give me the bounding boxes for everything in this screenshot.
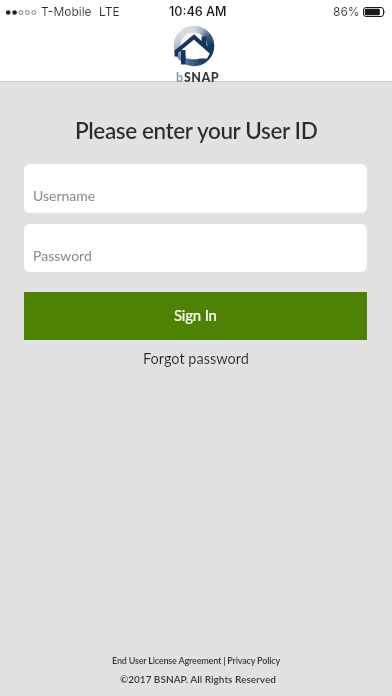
staticText: SNAP xyxy=(184,70,220,85)
button[interactable]: Sign In xyxy=(24,292,367,340)
staticText: ©2017 BSNAP. All Rights Reserved xyxy=(120,673,276,685)
staticText: LTE xyxy=(99,4,120,19)
staticText: Password xyxy=(33,247,92,264)
button[interactable]: Forgot password xyxy=(143,350,249,367)
button[interactable]: End User License Agreement | Privacy Pol… xyxy=(112,655,280,666)
button[interactable]: Username xyxy=(24,164,367,213)
staticText: Username xyxy=(33,187,96,204)
button[interactable]: Password xyxy=(24,224,367,272)
staticText: b xyxy=(176,70,184,85)
staticText: T-Mobile xyxy=(41,4,92,19)
staticText: Please enter your User ID xyxy=(75,117,318,144)
staticText: 10:46 AM xyxy=(169,4,227,19)
staticText: 86% xyxy=(333,4,360,19)
staticText: Sign In xyxy=(174,306,217,324)
